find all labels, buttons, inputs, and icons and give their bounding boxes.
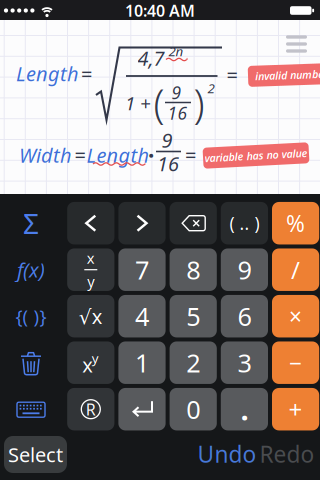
- button[interactable]: 4: [118, 295, 166, 337]
- staticText: Σ: [23, 205, 39, 242]
- button[interactable]: Brackets: [6, 296, 56, 336]
- button[interactable]: 5: [170, 295, 217, 337]
- staticText: =: [226, 62, 237, 88]
- staticText: =: [185, 142, 196, 168]
- button[interactable]: Decimal point: [221, 388, 268, 430]
- button[interactable]: 9: [221, 248, 268, 291]
- staticText: 1: [135, 346, 149, 379]
- staticText: invalid number r: [255, 67, 320, 81]
- staticText: 2n: [168, 42, 183, 60]
- staticText: 2: [186, 346, 200, 379]
- button[interactable]: History: [281, 32, 311, 56]
- button[interactable]: 2: [170, 341, 217, 384]
- staticText: 10:40 AM: [125, 0, 195, 21]
- staticText: 6: [237, 299, 251, 333]
- button[interactable]: Parentheses: [221, 202, 268, 244]
- staticText: 9: [161, 127, 172, 153]
- staticText: .: [240, 390, 248, 429]
- staticText: x: [87, 248, 95, 268]
- staticText: y: [87, 271, 94, 291]
- staticText: 2: [207, 79, 214, 97]
- staticText: 1 +: [125, 91, 151, 115]
- staticText: −: [289, 348, 302, 378]
- button[interactable]: Backspace: [170, 202, 217, 244]
- button[interactable]: Return: [118, 388, 166, 430]
- button[interactable]: Multiply: [272, 295, 319, 337]
- button[interactable]: Hide keyboard: [6, 389, 56, 429]
- staticText: Length: [86, 142, 149, 168]
- button[interactable]: Redo: [257, 436, 317, 472]
- staticText: 8: [186, 253, 200, 286]
- button[interactable]: Divide: [272, 248, 319, 291]
- staticText: =: [74, 142, 85, 168]
- staticText: ( .. ): [229, 212, 259, 235]
- button[interactable]: 7: [118, 248, 166, 291]
- staticText: x: [82, 351, 93, 378]
- staticText: 5: [186, 299, 200, 333]
- staticText: 9: [237, 253, 251, 286]
- button[interactable]: Undo: [197, 436, 257, 472]
- staticText: +: [289, 393, 303, 425]
- staticText: f(x): [17, 256, 45, 283]
- staticText: ): [193, 76, 204, 129]
- staticText: (: [153, 76, 164, 129]
- button[interactable]: Clear: [6, 343, 56, 383]
- staticText: =: [81, 61, 92, 87]
- button[interactable]: Square root: [67, 295, 114, 337]
- staticText: Select: [8, 441, 63, 468]
- staticText: Redo: [259, 439, 314, 469]
- button[interactable]: Power: [67, 341, 114, 384]
- button[interactable]: 0: [170, 388, 217, 430]
- button[interactable]: 8: [170, 248, 217, 291]
- button[interactable]: Select: [4, 436, 67, 473]
- staticText: 16: [157, 150, 179, 177]
- staticText: 0: [186, 392, 200, 426]
- button[interactable]: Plus: [272, 388, 319, 430]
- button[interactable]: Sum: [6, 203, 56, 243]
- staticText: 4: [135, 299, 149, 333]
- button[interactable]: Move left: [67, 202, 114, 244]
- staticText: Undo: [197, 439, 256, 469]
- button[interactable]: Minus: [272, 341, 319, 384]
- staticText: 3: [237, 346, 251, 379]
- staticText: {( )}: [15, 304, 46, 329]
- staticText: R: [86, 399, 96, 420]
- staticText: y: [92, 349, 99, 367]
- staticText: Length: [16, 60, 79, 87]
- button[interactable]: 1: [118, 341, 166, 384]
- button[interactable]: Fraction: [67, 248, 114, 291]
- button[interactable]: Functions: [6, 250, 56, 290]
- button[interactable]: 3: [221, 341, 268, 384]
- staticText: ×: [289, 301, 302, 331]
- button[interactable]: 6: [221, 295, 268, 337]
- staticText: Width: [19, 142, 72, 168]
- staticText: variable has no value: [204, 148, 307, 163]
- staticText: 9: [171, 81, 181, 104]
- staticText: 16: [167, 101, 187, 124]
- button[interactable]: Move right: [118, 202, 166, 244]
- staticText: ·: [148, 140, 154, 170]
- staticText: /: [291, 254, 300, 286]
- button[interactable]: Percent: [272, 202, 319, 244]
- button[interactable]: Memory: [67, 388, 114, 430]
- staticText: %: [286, 208, 305, 238]
- staticText: √x: [79, 303, 103, 329]
- staticText: 7: [135, 253, 149, 286]
- staticText: 4,7: [137, 45, 164, 71]
